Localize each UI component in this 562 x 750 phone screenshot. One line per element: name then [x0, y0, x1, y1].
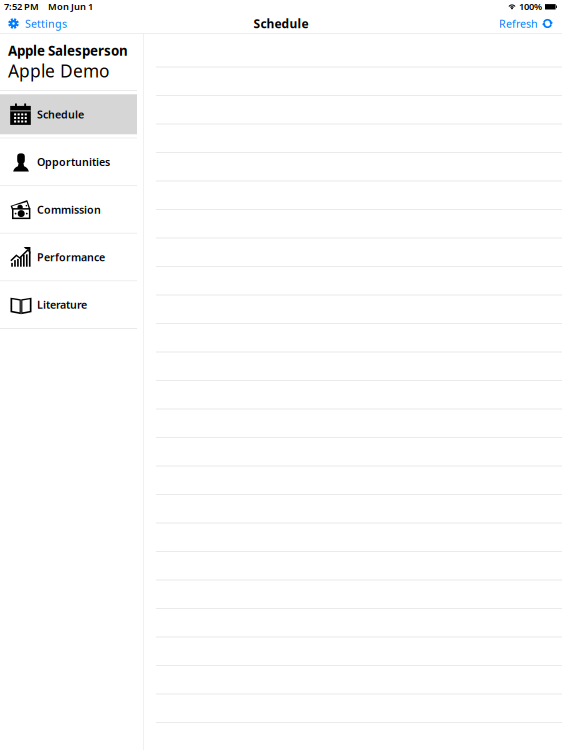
staticText: Apple Demo	[8, 59, 109, 82]
staticText: Apple Salesperson	[8, 42, 128, 59]
staticText: Opportunities	[37, 155, 110, 169]
button[interactable]: Settings	[0, 13, 73, 34]
staticText: 100%	[519, 0, 542, 13]
staticText: Schedule	[37, 107, 84, 121]
staticText: Performance	[37, 250, 105, 264]
staticText: Refresh	[499, 16, 538, 31]
staticText: Schedule	[253, 15, 308, 31]
staticText: Commission	[37, 202, 101, 217]
button[interactable]: Refresh	[493, 13, 562, 34]
button[interactable]: Opportunities	[0, 139, 143, 185]
button[interactable]: Schedule	[0, 91, 143, 138]
staticText: Literature	[37, 298, 87, 312]
staticText: Settings	[25, 16, 67, 31]
button[interactable]: Performance	[0, 234, 143, 280]
staticText: Mon Jun 1	[48, 0, 93, 13]
button[interactable]: Literature	[0, 281, 143, 328]
button[interactable]: Commission	[0, 186, 143, 233]
staticText: 7:52 PM	[4, 0, 39, 13]
